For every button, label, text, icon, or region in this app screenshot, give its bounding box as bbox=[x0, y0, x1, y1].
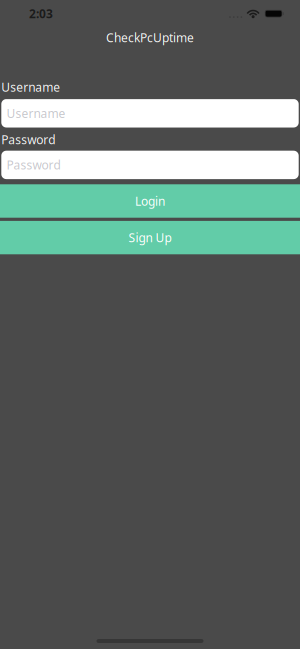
staticText: Password bbox=[1, 131, 55, 148]
staticText: Username bbox=[1, 79, 60, 95]
staticText: Login bbox=[135, 193, 165, 209]
staticText: Sign Up bbox=[128, 229, 171, 246]
button[interactable]: Login bbox=[0, 184, 300, 218]
staticText: CheckPcUptime bbox=[106, 29, 194, 46]
staticText: 2:03 bbox=[29, 5, 53, 22]
staticText: Password bbox=[6, 157, 60, 173]
staticText: Username bbox=[6, 105, 65, 121]
button[interactable]: Sign Up bbox=[0, 221, 300, 254]
